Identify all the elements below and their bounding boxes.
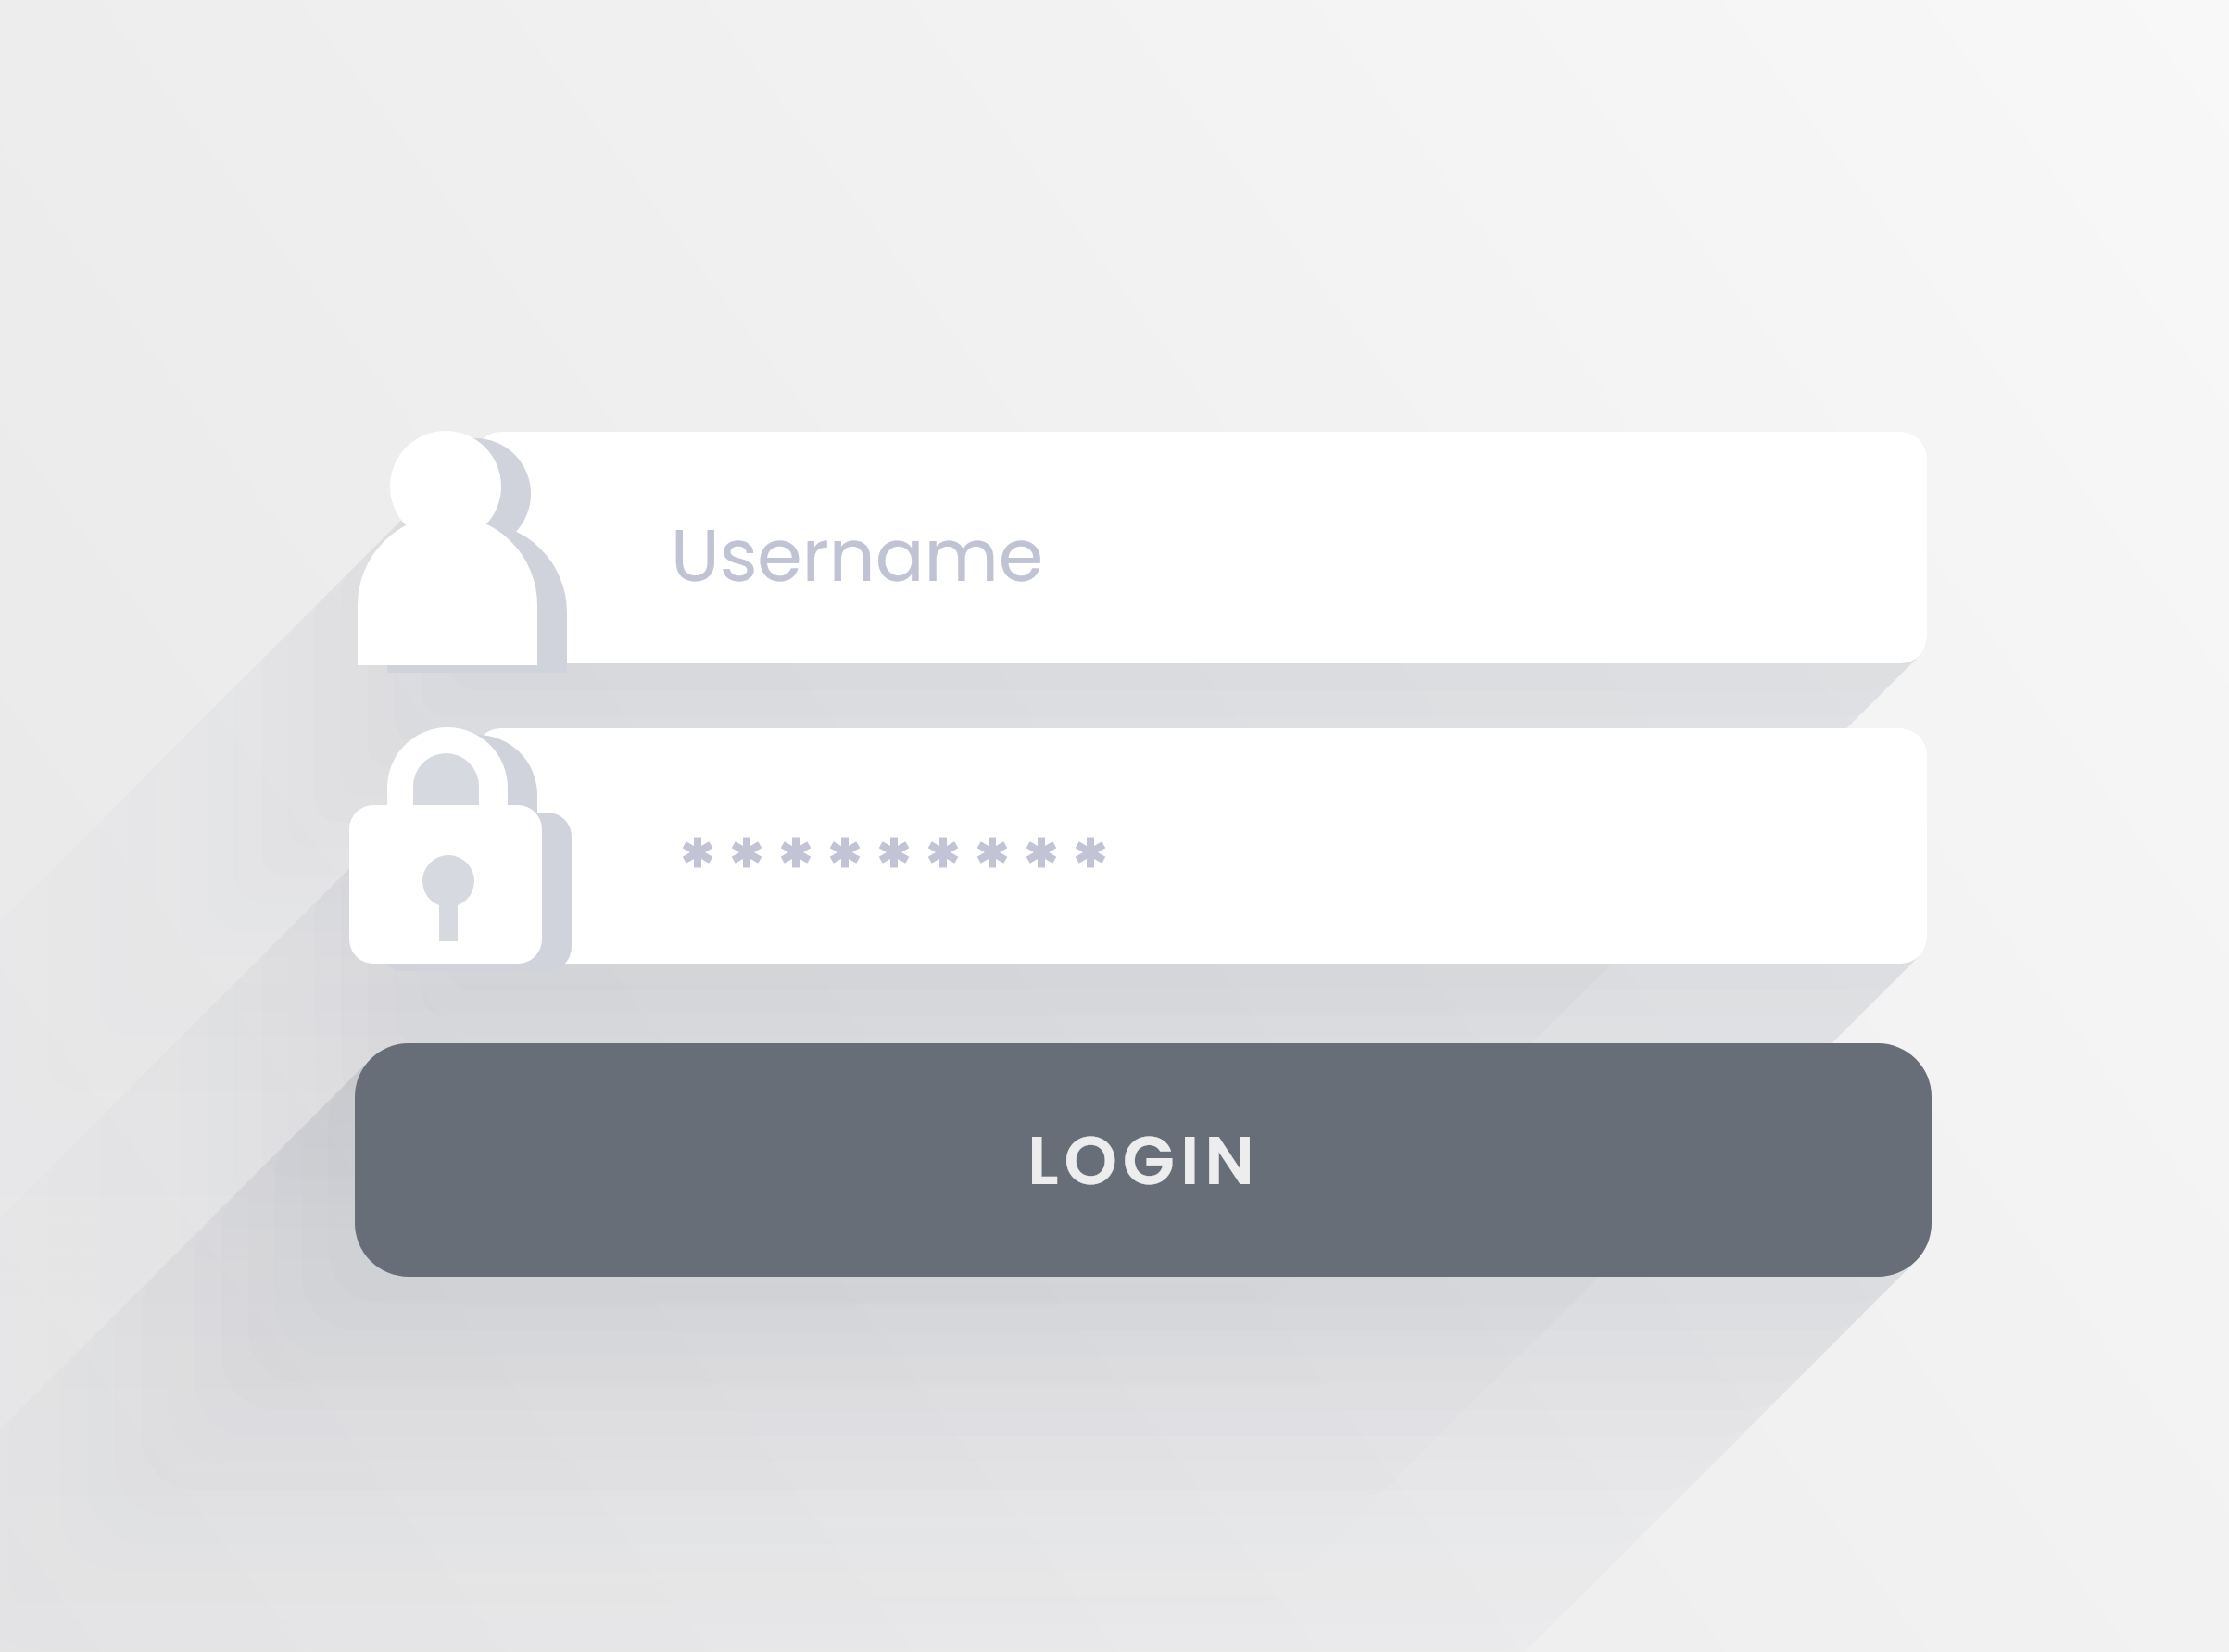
staticText: LOGIN [1027, 1113, 1260, 1207]
button[interactable]: Username field [474, 432, 1927, 663]
button[interactable]: Password [474, 728, 1927, 964]
staticText: Username [671, 505, 1044, 606]
button[interactable]: LOGIN [355, 1043, 1932, 1277]
